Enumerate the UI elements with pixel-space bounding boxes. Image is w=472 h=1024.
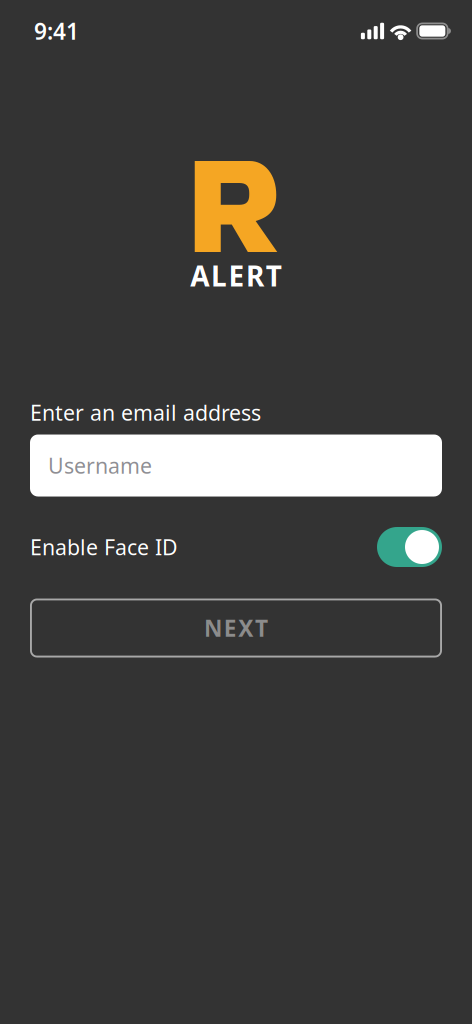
staticText: Enable Face ID: [30, 533, 178, 561]
button[interactable]: Enable Face ID: [377, 527, 442, 567]
staticText: R: [246, 257, 264, 294]
staticText: L: [211, 257, 227, 294]
staticText: T: [266, 257, 282, 294]
staticText: E: [224, 613, 237, 643]
staticText: A: [190, 257, 209, 294]
staticText: 9:41: [34, 16, 79, 46]
staticText: Username: [48, 451, 152, 480]
staticText: E: [228, 257, 244, 294]
staticText: T: [255, 613, 268, 643]
staticText: X: [238, 613, 253, 643]
button[interactable]: Username: [30, 434, 442, 496]
staticText: N: [204, 613, 222, 643]
staticText: Enter an email address: [30, 398, 261, 426]
button[interactable]: N: [30, 598, 442, 657]
